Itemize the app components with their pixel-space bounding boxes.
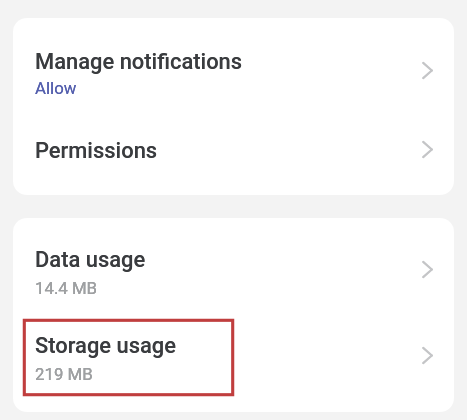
other: Open Data usage	[421, 259, 434, 280]
staticText: 219 MB	[35, 364, 93, 384]
other: Open Permissions	[421, 139, 434, 160]
other: Open Manage notifications	[421, 60, 434, 81]
staticText: Manage notifications	[35, 49, 243, 75]
button[interactable]: Data usage	[13, 218, 454, 304]
staticText: 219 MB	[35, 364, 93, 384]
staticText: Allow	[35, 78, 77, 98]
button[interactable]: Storage usage	[13, 304, 454, 390]
staticText: Data usage	[35, 247, 146, 273]
staticText: Allow	[35, 78, 77, 98]
staticText: Storage usage	[35, 333, 176, 359]
staticText: 14.4 MB	[35, 278, 98, 298]
staticText: Permissions	[35, 138, 158, 164]
button[interactable]: Manage notifications	[13, 18, 454, 106]
staticText: Manage notifications	[35, 49, 243, 75]
other: Open Storage usage	[421, 345, 434, 366]
staticText: 14.4 MB	[35, 278, 98, 298]
button[interactable]: Permissions	[13, 106, 454, 194]
staticText: Storage usage	[35, 333, 176, 359]
staticText: Data usage	[35, 247, 146, 273]
staticText: Permissions	[35, 138, 158, 164]
